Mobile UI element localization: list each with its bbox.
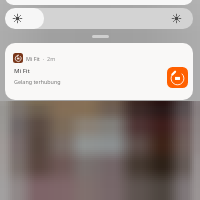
staticText: Mi Fit <box>26 55 40 62</box>
button[interactable]: Mi Fit <box>5 43 193 100</box>
button[interactable]: Open Mi Fit <box>167 67 188 88</box>
staticText: Mi Fit <box>14 67 30 75</box>
staticText: Gelang terhubung <box>14 78 61 85</box>
staticText: · 2m <box>40 55 56 62</box>
button[interactable]: Brightness <box>5 8 193 29</box>
